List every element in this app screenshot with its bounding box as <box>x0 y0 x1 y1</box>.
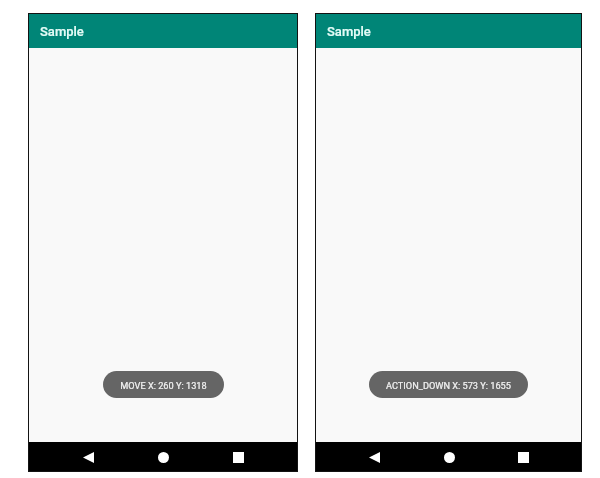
staticText: Sample <box>40 24 84 39</box>
button[interactable]: Home <box>434 442 464 472</box>
staticText: Sample <box>327 24 371 39</box>
button[interactable]: Recents <box>223 442 253 472</box>
button[interactable]: MOVE X: 260 Y: 1318 <box>103 371 224 398</box>
button[interactable]: Home <box>148 442 178 472</box>
button[interactable]: Back <box>73 442 103 472</box>
button[interactable]: Recents <box>508 442 538 472</box>
staticText: ACTION_DOWN X: 573 Y: 1655 <box>386 380 511 391</box>
staticText: MOVE X: 260 Y: 1318 <box>120 380 207 391</box>
button[interactable]: Back <box>359 442 389 472</box>
button[interactable]: ACTION_DOWN X: 573 Y: 1655 <box>369 371 528 398</box>
